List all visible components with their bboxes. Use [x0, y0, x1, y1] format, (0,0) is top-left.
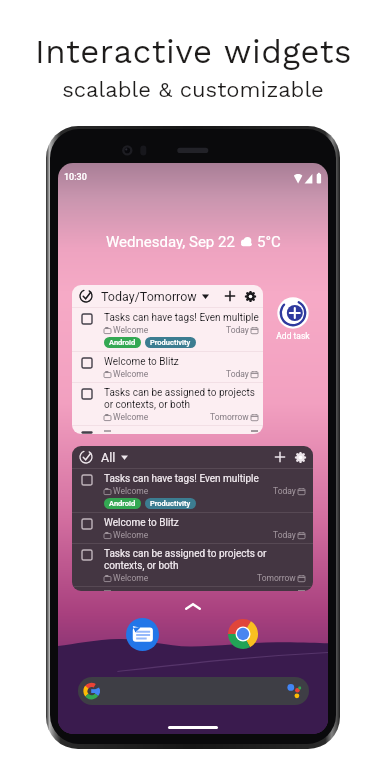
staticText: Welcome — [113, 412, 149, 422]
staticText: Tasks can be assigned to projects or con… — [104, 387, 263, 411]
staticText: Android — [109, 338, 136, 347]
staticText: Tasks can be assigned to projects or con… — [104, 548, 295, 572]
staticText: All — [101, 450, 116, 465]
button[interactable]: Search — [78, 677, 309, 705]
staticText: Welcome — [113, 573, 149, 583]
button[interactable]: Chrome — [228, 619, 258, 649]
button[interactable]: Tasks can be assigned to projects or con… — [82, 387, 263, 422]
button[interactable]: Welcome to Blitz — [82, 517, 313, 540]
button[interactable]: Welcome to Blitz — [82, 356, 263, 379]
button[interactable]: Add task — [272, 449, 288, 465]
staticText: Tomorrow — [257, 573, 296, 583]
staticText: Productivity — [150, 499, 191, 508]
button[interactable]: Add task — [222, 288, 238, 304]
staticText: Welcome — [113, 486, 149, 496]
staticText: Tap the + to add a task — [104, 430, 206, 431]
staticText: Welcome to Blitz — [104, 356, 179, 368]
button[interactable]: Messages — [126, 618, 159, 651]
staticText: Interactive widgets — [35, 32, 352, 71]
staticText: Today — [273, 530, 296, 540]
button[interactable]: Tap the + to add a task — [82, 430, 263, 431]
staticText: Tasks can have tags! Even multiple — [104, 473, 259, 485]
staticText: Wednesday, Sep 22 — [106, 233, 235, 249]
staticText: scalable & customizable — [62, 77, 324, 103]
staticText: Tomorrow — [210, 412, 249, 422]
button[interactable]: Widget settings — [242, 288, 258, 304]
staticText: Add task — [276, 331, 310, 341]
button[interactable]: Tasks can have tags! Even multiple — [82, 312, 263, 348]
staticText: Today — [226, 325, 249, 335]
button[interactable]: Add task — [270, 297, 316, 341]
button[interactable]: Widget settings — [292, 449, 308, 465]
staticText: Today — [226, 369, 249, 379]
button[interactable]: Today/Tomorrow — [72, 285, 263, 434]
staticText: 5°C — [257, 233, 281, 249]
staticText: Android — [109, 499, 136, 508]
staticText: Welcome to Blitz — [104, 517, 179, 529]
button[interactable]: All — [72, 446, 313, 591]
staticText: 10:30 — [64, 172, 87, 183]
staticText: Tasks can have tags! Even multiple — [104, 312, 259, 324]
staticText: Welcome — [113, 369, 149, 379]
staticText: Welcome — [113, 325, 149, 335]
staticText: Productivity — [150, 338, 191, 347]
button[interactable]: Tasks can be assigned to projects or con… — [82, 548, 313, 583]
staticText: Today/Tomorrow — [101, 289, 197, 304]
button[interactable]: Tasks can have tags! Even multiple — [82, 473, 313, 509]
staticText: Welcome — [113, 530, 149, 540]
staticText: Today — [273, 486, 296, 496]
